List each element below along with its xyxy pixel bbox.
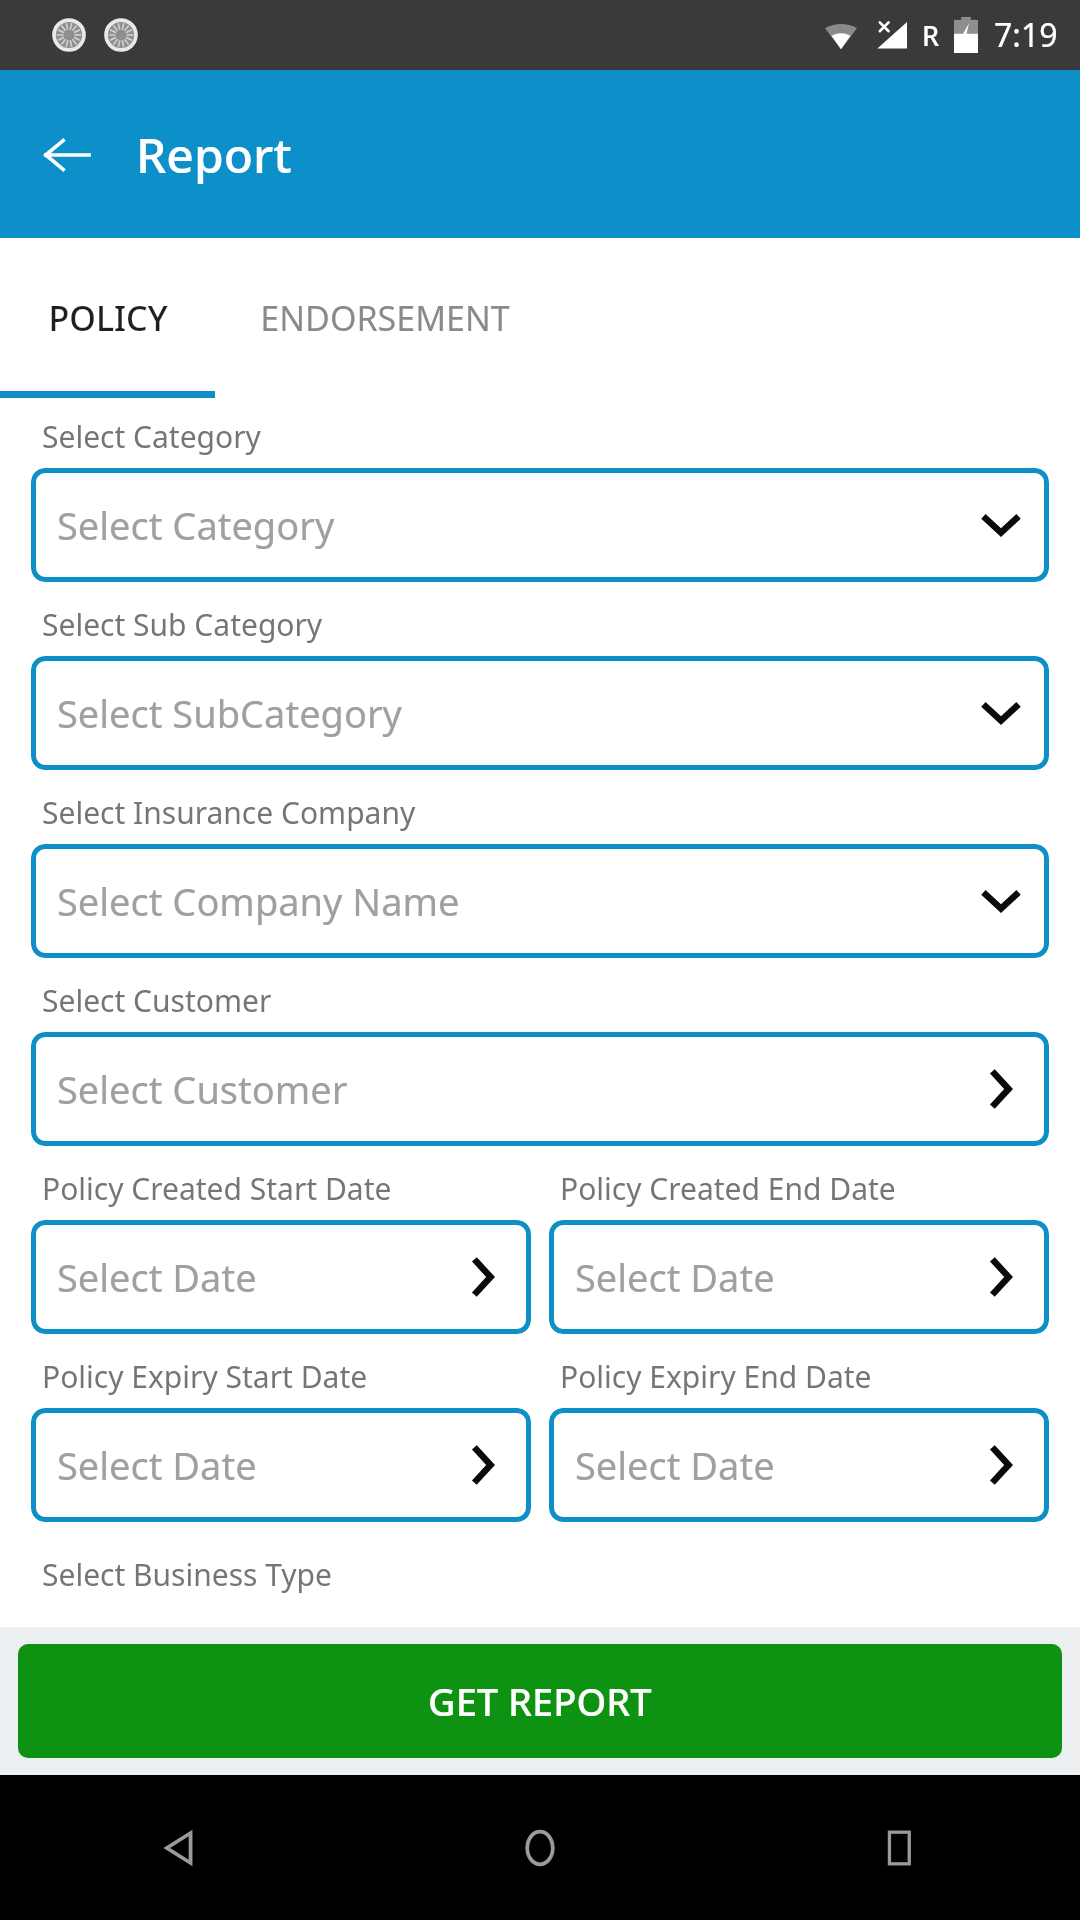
button[interactable]: POLICY: [0, 238, 215, 398]
staticText: Select Date: [575, 1439, 775, 1491]
button[interactable]: Home: [360, 1775, 720, 1920]
button[interactable]: Select Date: [549, 1220, 1049, 1334]
staticText: Select Date: [57, 1251, 257, 1303]
staticText: ENDORSEMENT: [260, 295, 510, 341]
staticText: Select Business Type: [42, 1554, 332, 1595]
button[interactable]: Back: [36, 124, 98, 186]
button[interactable]: Select SubCategory: [31, 656, 1049, 770]
staticText: 7:19: [994, 13, 1058, 57]
button[interactable]: Back: [0, 1775, 360, 1920]
button[interactable]: ENDORSEMENT: [215, 238, 555, 398]
staticText: Select Category: [42, 416, 261, 457]
staticText: Policy Expiry End Date: [560, 1356, 872, 1397]
button[interactable]: Select Date: [549, 1408, 1049, 1522]
staticText: R: [922, 17, 940, 54]
button[interactable]: GET REPORT: [18, 1644, 1062, 1758]
staticText: Select SubCategory: [57, 687, 403, 739]
staticText: Select Company Name: [57, 875, 460, 927]
staticText: Policy Created End Date: [560, 1168, 896, 1209]
button[interactable]: Select Company Name: [31, 844, 1049, 958]
staticText: Report: [136, 122, 292, 187]
staticText: Select Customer: [42, 980, 272, 1021]
button[interactable]: Select Category: [31, 468, 1049, 582]
staticText: Policy Created Start Date: [42, 1168, 392, 1209]
button[interactable]: Select Customer: [31, 1032, 1049, 1146]
staticText: Select Customer: [57, 1063, 348, 1115]
staticText: Select Date: [57, 1439, 257, 1491]
button[interactable]: Select Date: [31, 1408, 531, 1522]
staticText: Select Sub Category: [42, 604, 323, 645]
staticText: Select Date: [575, 1251, 775, 1303]
button[interactable]: Recent apps: [720, 1775, 1080, 1920]
button[interactable]: Select Date: [31, 1220, 531, 1334]
staticText: Select Insurance Company: [42, 792, 416, 833]
staticText: GET REPORT: [428, 1675, 652, 1727]
staticText: Select Category: [57, 499, 335, 551]
staticText: Policy Expiry Start Date: [42, 1356, 368, 1397]
staticText: POLICY: [48, 295, 168, 341]
